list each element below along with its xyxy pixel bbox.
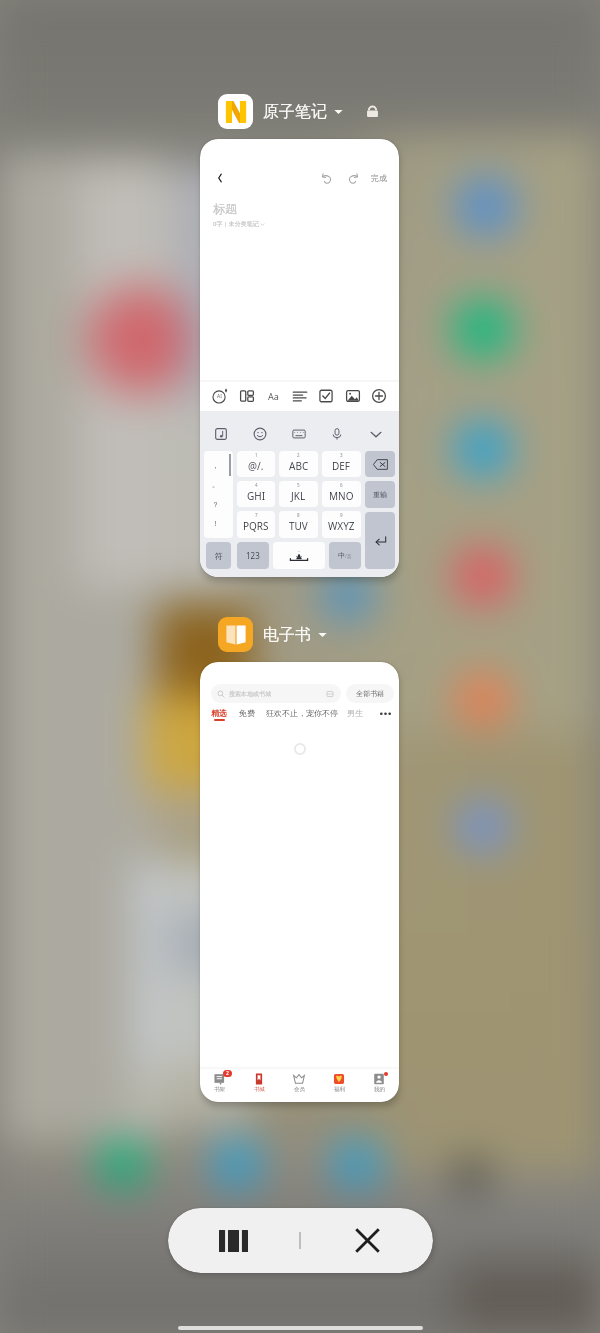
staticText: MNO <box>329 489 354 503</box>
staticText: 搜索本地或书城 <box>229 690 271 698</box>
staticText: 免费 <box>239 708 255 718</box>
button[interactable]: Checklist <box>318 388 334 404</box>
button[interactable]: 原子笔记 icon <box>218 94 253 129</box>
button[interactable]: Font <box>265 388 281 404</box>
staticText: TUV <box>289 519 308 533</box>
staticText: AI <box>217 393 222 400</box>
button[interactable]: AI <box>212 388 228 404</box>
staticText: 9 <box>340 512 343 518</box>
staticText: 3 <box>340 452 343 458</box>
staticText: /英 <box>345 553 352 559</box>
button[interactable]: 书城 <box>239 1073 279 1102</box>
button[interactable]: 6 <box>322 481 361 507</box>
staticText: 0字 | 未分类笔记 <box>213 220 259 228</box>
staticText: 完成 <box>371 173 387 183</box>
button[interactable]: Add <box>371 388 387 404</box>
button[interactable]: Enter <box>365 512 395 569</box>
button[interactable]: More options <box>333 106 344 117</box>
button[interactable]: 2 <box>279 451 318 477</box>
staticText: 男生 <box>347 708 363 718</box>
button[interactable]: 4 <box>237 481 275 507</box>
button[interactable]: 7 <box>237 511 275 538</box>
staticText: WXYZ <box>328 519 355 533</box>
button[interactable]: Hide keyboard <box>369 427 383 441</box>
staticText: 7 <box>255 512 258 518</box>
button[interactable]: Back <box>213 171 227 185</box>
staticText: 我的 <box>374 1086 385 1093</box>
button[interactable]: 电子书 icon <box>218 617 253 652</box>
button[interactable]: Emoji <box>253 427 267 441</box>
button[interactable]: 重输 <box>365 481 395 508</box>
staticText: 中 <box>338 551 345 560</box>
staticText: 会员 <box>294 1086 305 1093</box>
staticText: 书城 <box>254 1086 265 1093</box>
button[interactable]: Image <box>345 388 361 404</box>
button[interactable]: Close all <box>301 1208 433 1273</box>
button[interactable]: 5 <box>279 481 318 507</box>
staticText: 2 <box>226 1070 229 1077</box>
button[interactable]: Redo <box>344 170 360 186</box>
staticText: 精选 <box>211 708 227 718</box>
button[interactable]: Backspace <box>365 451 395 477</box>
staticText: ABC <box>289 459 309 473</box>
button[interactable]: Lock app <box>366 105 379 118</box>
staticText: 5 <box>297 482 300 488</box>
staticText: ！ <box>212 519 219 528</box>
staticText: 2 <box>297 452 300 458</box>
staticText: 123 <box>246 550 260 561</box>
button[interactable]: 3 <box>322 451 361 477</box>
button[interactable]: 123 <box>237 542 269 569</box>
button[interactable]: Keyboard layout <box>292 427 306 441</box>
button[interactable]: 符 <box>206 542 231 569</box>
staticText: 狂欢不止，宠你不停 <box>266 708 338 718</box>
staticText: 原子笔记 <box>263 102 327 122</box>
button[interactable]: 全部书籍 <box>346 684 394 703</box>
staticText: ， <box>212 461 219 470</box>
button[interactable]: Split screen <box>168 1208 299 1273</box>
button[interactable]: 中 <box>329 542 361 569</box>
staticText: 标题 <box>213 201 237 216</box>
button[interactable]: Space <box>273 542 325 569</box>
button[interactable]: Align <box>292 388 308 404</box>
button[interactable]: 2 <box>200 1073 239 1102</box>
staticText: DEF <box>332 459 351 473</box>
staticText: 1 <box>255 452 258 458</box>
staticText: GHI <box>247 489 266 503</box>
button[interactable]: Layout <box>239 388 255 404</box>
button[interactable]: 完成 <box>371 173 387 183</box>
staticText: 。 <box>212 480 219 489</box>
staticText: 4 <box>255 482 258 488</box>
staticText: 全部书籍 <box>356 689 384 698</box>
button[interactable]: 搜索本地或书城 <box>217 684 334 703</box>
button[interactable]: ， <box>204 451 233 538</box>
staticText: ？ <box>212 500 219 509</box>
button[interactable]: 9 <box>322 511 361 538</box>
staticText: Aa <box>268 390 279 402</box>
button[interactable]: Undo <box>319 170 335 186</box>
button[interactable]: Voice input <box>330 427 344 441</box>
button[interactable]: 1 <box>237 451 275 477</box>
button[interactable]: 会员 <box>279 1073 319 1102</box>
staticText: 书架 <box>214 1086 225 1093</box>
staticText: 符 <box>215 551 223 561</box>
staticText: 福利 <box>334 1086 345 1093</box>
staticText: 8 <box>297 512 300 518</box>
staticText: PQRS <box>243 519 269 533</box>
staticText: 重输 <box>373 490 387 499</box>
button[interactable]: Note <box>214 427 228 441</box>
staticText: 6 <box>340 482 343 488</box>
staticText: @/. <box>248 459 264 473</box>
button[interactable]: 福利 <box>319 1073 359 1102</box>
staticText: JKL <box>291 489 306 503</box>
button[interactable]: 我的 <box>359 1073 399 1102</box>
button[interactable]: More options <box>317 629 328 640</box>
button[interactable]: 8 <box>279 511 318 538</box>
staticText: 电子书 <box>263 625 311 645</box>
